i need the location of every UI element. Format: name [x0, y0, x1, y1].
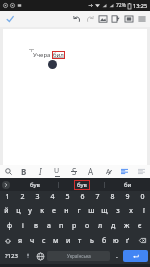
button[interactable]: и	[62, 233, 74, 248]
staticText: а	[47, 221, 51, 231]
staticText: у	[28, 206, 32, 216]
button[interactable]: Text color	[82, 165, 99, 178]
button[interactable]: 0	[135, 191, 150, 203]
button[interactable]: Underline	[48, 165, 65, 178]
button[interactable]: Italic	[32, 165, 48, 178]
button[interactable]: у	[24, 203, 36, 218]
button[interactable]: 9	[120, 191, 135, 203]
button[interactable]: Українська	[47, 251, 110, 261]
button[interactable]: є	[133, 218, 146, 233]
button[interactable]: щ	[98, 203, 111, 218]
button[interactable]: 8	[105, 191, 120, 203]
button[interactable]: д	[107, 218, 120, 233]
button[interactable]: 7	[90, 191, 105, 203]
button[interactable]: Expand toolbar	[2, 181, 10, 189]
button[interactable]: ь	[86, 233, 98, 248]
staticText: о	[85, 221, 90, 231]
button[interactable]: т	[74, 233, 86, 248]
button[interactable]: був	[59, 178, 104, 191]
staticText: л	[98, 221, 103, 231]
button[interactable]: Insert	[109, 11, 122, 27]
staticText: A	[106, 167, 111, 177]
button[interactable]: н	[60, 203, 72, 218]
staticText: .	[116, 251, 118, 261]
button[interactable]: ж	[120, 218, 133, 233]
staticText: 5	[65, 192, 70, 202]
staticText: U	[54, 166, 60, 176]
button[interactable]: ?123	[2, 248, 21, 264]
staticText: щ	[101, 206, 108, 216]
button[interactable]: Strikethrough	[65, 165, 82, 178]
button[interactable]: був	[12, 178, 58, 191]
staticText: ь	[90, 236, 94, 246]
button[interactable]: Comment	[122, 11, 135, 27]
staticText: є	[138, 221, 142, 231]
staticText: ш	[88, 206, 95, 216]
button[interactable]: м	[50, 233, 62, 248]
button[interactable]: Voice input	[21, 248, 34, 264]
staticText: ?123	[5, 252, 18, 260]
button[interactable]: ґ	[122, 233, 134, 248]
staticText: 0	[140, 192, 145, 202]
button[interactable]: Redo	[83, 11, 96, 27]
button[interactable]: а	[42, 218, 55, 233]
button[interactable]: More options	[135, 11, 148, 27]
button[interactable]: Insert image	[96, 11, 109, 27]
staticText: S	[72, 166, 77, 177]
button[interactable]: 6	[75, 191, 90, 203]
button[interactable]: ц	[12, 203, 24, 218]
staticText: д	[111, 221, 116, 231]
staticText: р	[72, 221, 77, 231]
button[interactable]: бил	[53, 51, 64, 59]
button[interactable]: п	[55, 218, 68, 233]
button[interactable]: Align	[133, 165, 150, 178]
button[interactable]: х	[124, 203, 137, 218]
button[interactable]: к	[36, 203, 48, 218]
button[interactable]: с	[38, 233, 50, 248]
button[interactable]: Highlight	[99, 165, 116, 178]
button[interactable]: би	[105, 178, 150, 191]
button[interactable]: Bold	[16, 165, 32, 178]
staticText: б	[102, 236, 107, 246]
button[interactable]: Enter	[123, 250, 148, 262]
button[interactable]: в	[29, 218, 42, 233]
button[interactable]: Учера	[3, 29, 147, 165]
button[interactable]: 4	[45, 191, 60, 203]
button[interactable]: ї	[137, 203, 150, 218]
staticText: к	[40, 206, 44, 216]
button[interactable]: Backspace	[134, 233, 150, 248]
button[interactable]: Search	[0, 165, 16, 178]
button[interactable]: Shift	[0, 233, 15, 248]
button[interactable]: 5	[60, 191, 75, 203]
staticText: Українська	[67, 253, 91, 259]
button[interactable]: л	[94, 218, 107, 233]
button[interactable]: ю	[110, 233, 122, 248]
button[interactable]: 3	[30, 191, 45, 203]
button[interactable]: я	[15, 233, 26, 248]
staticText: був	[30, 181, 40, 189]
button[interactable]: і	[16, 218, 29, 233]
button[interactable]: о	[81, 218, 94, 233]
staticText: е	[52, 206, 56, 216]
button[interactable]: е	[48, 203, 60, 218]
button[interactable]: ч	[26, 233, 38, 248]
button[interactable]: Done	[4, 13, 16, 25]
button[interactable]: Undo	[70, 11, 83, 27]
button[interactable]: 1	[0, 191, 15, 203]
button[interactable]: р	[68, 218, 81, 233]
button[interactable]: ф	[4, 218, 16, 233]
button[interactable]: 2	[15, 191, 30, 203]
staticText: 1	[5, 192, 10, 202]
button[interactable]: Change language	[34, 248, 47, 264]
staticText: би	[124, 181, 132, 189]
staticText: 8	[110, 192, 115, 202]
staticText: з	[116, 206, 120, 216]
button[interactable]: Align left	[116, 165, 133, 178]
button[interactable]: г	[72, 203, 85, 218]
button[interactable]: .	[110, 248, 123, 264]
button[interactable]: з	[111, 203, 124, 218]
button[interactable]: б	[98, 233, 110, 248]
button[interactable]: ш	[85, 203, 98, 218]
button[interactable]: й	[0, 203, 12, 218]
staticText: с	[42, 236, 46, 246]
